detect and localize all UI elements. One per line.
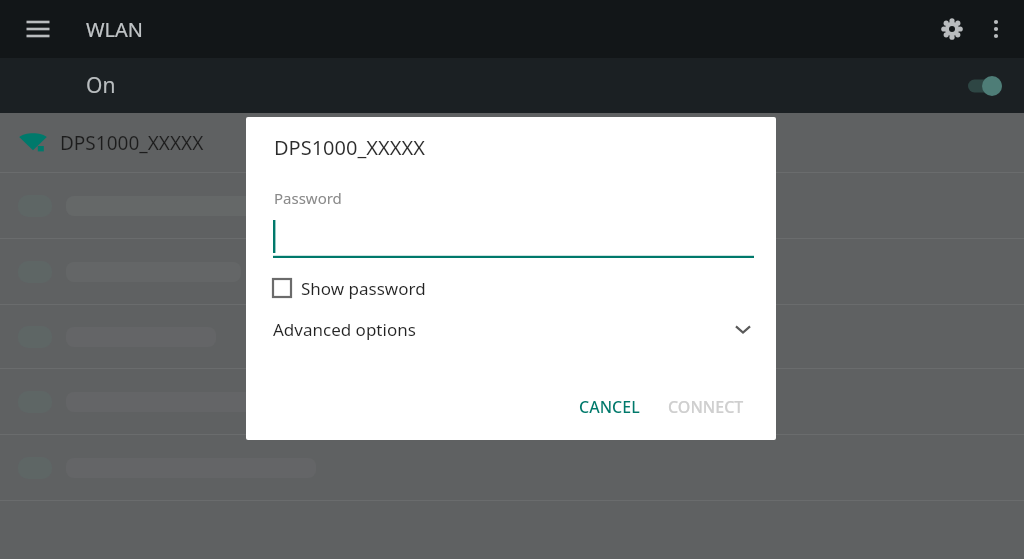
staticText: Show password bbox=[301, 277, 426, 300]
button[interactable]: Settings bbox=[928, 5, 976, 53]
button[interactable] bbox=[0, 369, 1024, 435]
staticText: CONNECT bbox=[668, 396, 744, 418]
staticText: Advanced options bbox=[273, 318, 416, 341]
button[interactable]: On bbox=[0, 58, 1024, 113]
button[interactable] bbox=[273, 218, 754, 258]
button[interactable] bbox=[0, 239, 1024, 305]
button[interactable]: CONNECT bbox=[658, 388, 754, 426]
staticText: On bbox=[86, 71, 116, 100]
button[interactable]: DPS1000_XXXXX bbox=[0, 113, 1024, 173]
button[interactable]: Open navigation drawer bbox=[14, 5, 62, 53]
button[interactable]: CANCEL bbox=[569, 388, 650, 426]
button[interactable] bbox=[0, 435, 1024, 501]
staticText: Password bbox=[274, 188, 342, 208]
button[interactable] bbox=[0, 305, 1024, 369]
button[interactable]: Show password bbox=[246, 270, 776, 306]
button[interactable]: More options bbox=[976, 9, 1016, 49]
button[interactable] bbox=[0, 173, 1024, 239]
button[interactable]: Advanced options bbox=[246, 311, 776, 347]
staticText: CANCEL bbox=[579, 396, 640, 418]
staticText: DPS1000_XXXXX bbox=[274, 134, 425, 161]
staticText: WLAN bbox=[86, 16, 144, 43]
staticText: DPS1000_XXXXX bbox=[60, 130, 204, 156]
